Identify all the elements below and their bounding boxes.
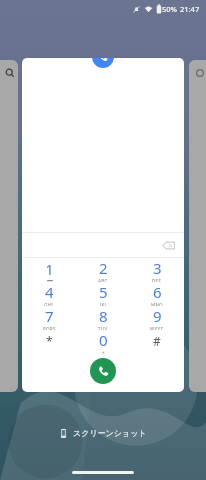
button[interactable]: 2 [76,258,130,282]
staticText: 8 [99,306,108,326]
staticText: 9 [153,306,162,326]
staticText: JKL [100,302,108,306]
button[interactable]: 9 [130,306,184,330]
button[interactable]: Call [90,358,116,384]
button[interactable]: Backspace [22,58,184,392]
button[interactable]: * [22,330,76,354]
button[interactable]: 3 [130,258,184,282]
staticText: PQRS [43,326,56,330]
staticText: 0 [99,330,108,350]
staticText: 21:47 [180,4,200,14]
button[interactable] [0,60,18,392]
staticText: スクリーンショット [73,428,147,438]
button[interactable]: 7 [22,306,76,330]
button[interactable]: # [130,330,184,354]
staticText: 2 [99,258,108,278]
staticText: 5 [99,282,108,302]
button[interactable]: 1 [22,258,76,282]
button[interactable]: スクリーンショット [59,428,147,438]
staticText: 7 [45,306,54,326]
button[interactable]: 8 [76,306,130,330]
staticText: GHI [44,302,54,306]
button[interactable]: 5 [76,282,130,306]
staticText: DEF [152,278,162,282]
staticText: * [46,333,53,349]
button[interactable] [189,60,206,392]
staticText: ABC [98,278,108,282]
staticText: # [153,333,161,349]
staticText: 6 [153,282,162,302]
staticText: TUV [98,326,108,330]
button[interactable]: 4 [22,282,76,306]
button[interactable]: 0 [76,330,130,354]
staticText: + [102,350,105,354]
staticText: 50% [162,4,177,14]
button[interactable]: Phone app [92,58,114,68]
staticText: MNO [151,302,163,306]
button[interactable]: 6 [130,282,184,306]
staticText: 3 [153,258,162,278]
button[interactable]: Backspace [160,237,176,253]
staticText: 4 [45,282,54,302]
staticText: WXYZ [150,326,164,330]
staticText: 1 [45,259,54,279]
